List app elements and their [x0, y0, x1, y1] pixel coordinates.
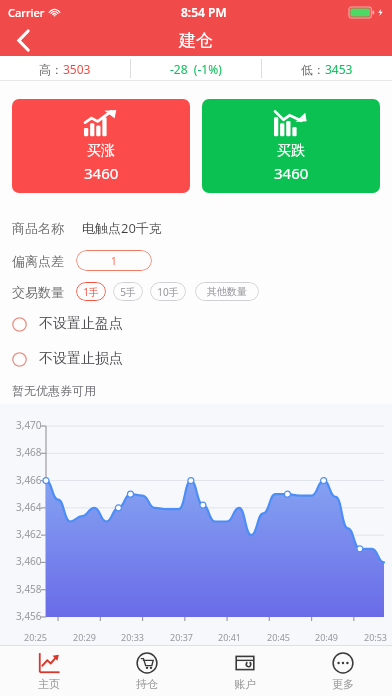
staticText: 3,460	[16, 554, 42, 568]
button[interactable]: Back	[0, 24, 46, 56]
staticText: 电触点20千克	[82, 219, 162, 237]
staticText: 8:54 PM	[181, 4, 227, 20]
staticText: 3453	[325, 61, 353, 77]
staticText: 10手	[157, 285, 179, 299]
staticText: 1	[111, 254, 117, 268]
staticText: 商品名称	[12, 220, 64, 236]
staticText: 偏离点差	[12, 253, 64, 269]
staticText: 买涨	[87, 142, 115, 160]
button[interactable]: 更多	[294, 646, 392, 696]
staticText: 3,462	[16, 527, 42, 541]
staticText: 3,456	[16, 609, 42, 623]
staticText: 其他数量	[207, 285, 247, 298]
staticText: 20:33	[121, 631, 145, 643]
staticText: -28 (-1%)	[170, 61, 222, 77]
staticText: 账户	[234, 677, 256, 691]
staticText: 20:49	[315, 631, 339, 643]
staticText: 20:29	[73, 631, 97, 643]
staticText: 3460	[274, 163, 309, 183]
staticText: 建仓	[179, 30, 213, 51]
staticText: 交易数量	[12, 284, 64, 300]
staticText: 更多	[332, 677, 354, 691]
staticText: 3460	[84, 163, 119, 183]
staticText: Carrier	[8, 5, 45, 20]
staticText: 主页	[38, 677, 60, 691]
button[interactable]: 5手	[113, 282, 143, 301]
button[interactable]: 账户	[196, 646, 294, 696]
button[interactable]: 主页	[0, 646, 98, 696]
staticText: 1手	[83, 285, 99, 299]
staticText: 20:45	[267, 631, 291, 643]
staticText: 买跌	[277, 142, 305, 160]
staticText: 3,464	[16, 500, 42, 514]
staticText: 20:25	[24, 631, 48, 643]
button[interactable]: 买跌	[202, 99, 380, 193]
staticText: 3,468	[16, 445, 42, 459]
staticText: 3,470	[16, 418, 42, 432]
staticText: 不设置止损点	[39, 350, 123, 368]
staticText: 3,458	[16, 582, 42, 596]
staticText: 3,466	[16, 473, 42, 487]
staticText: 持仓	[136, 677, 158, 691]
staticText: 20:53	[364, 631, 388, 643]
button[interactable]: 其他数量	[195, 282, 259, 301]
button[interactable]: 不设置止损点	[12, 350, 380, 368]
staticText: 20:41	[218, 631, 242, 643]
staticText: 5手	[120, 285, 136, 299]
button[interactable]: 持仓	[98, 646, 196, 696]
staticText: 高：	[39, 62, 63, 77]
button[interactable]: 10手	[150, 282, 186, 301]
staticText: 不设置止盈点	[39, 315, 123, 333]
button[interactable]: 不设置止盈点	[12, 315, 380, 333]
button[interactable]: 1	[76, 250, 152, 271]
button[interactable]: 1手	[76, 282, 106, 301]
staticText: 20:37	[170, 631, 194, 643]
staticText: 暂无优惠券可用	[12, 383, 96, 398]
staticText: 3503	[63, 61, 91, 77]
staticText: 低：	[301, 62, 325, 77]
button[interactable]: 买涨	[12, 99, 190, 193]
